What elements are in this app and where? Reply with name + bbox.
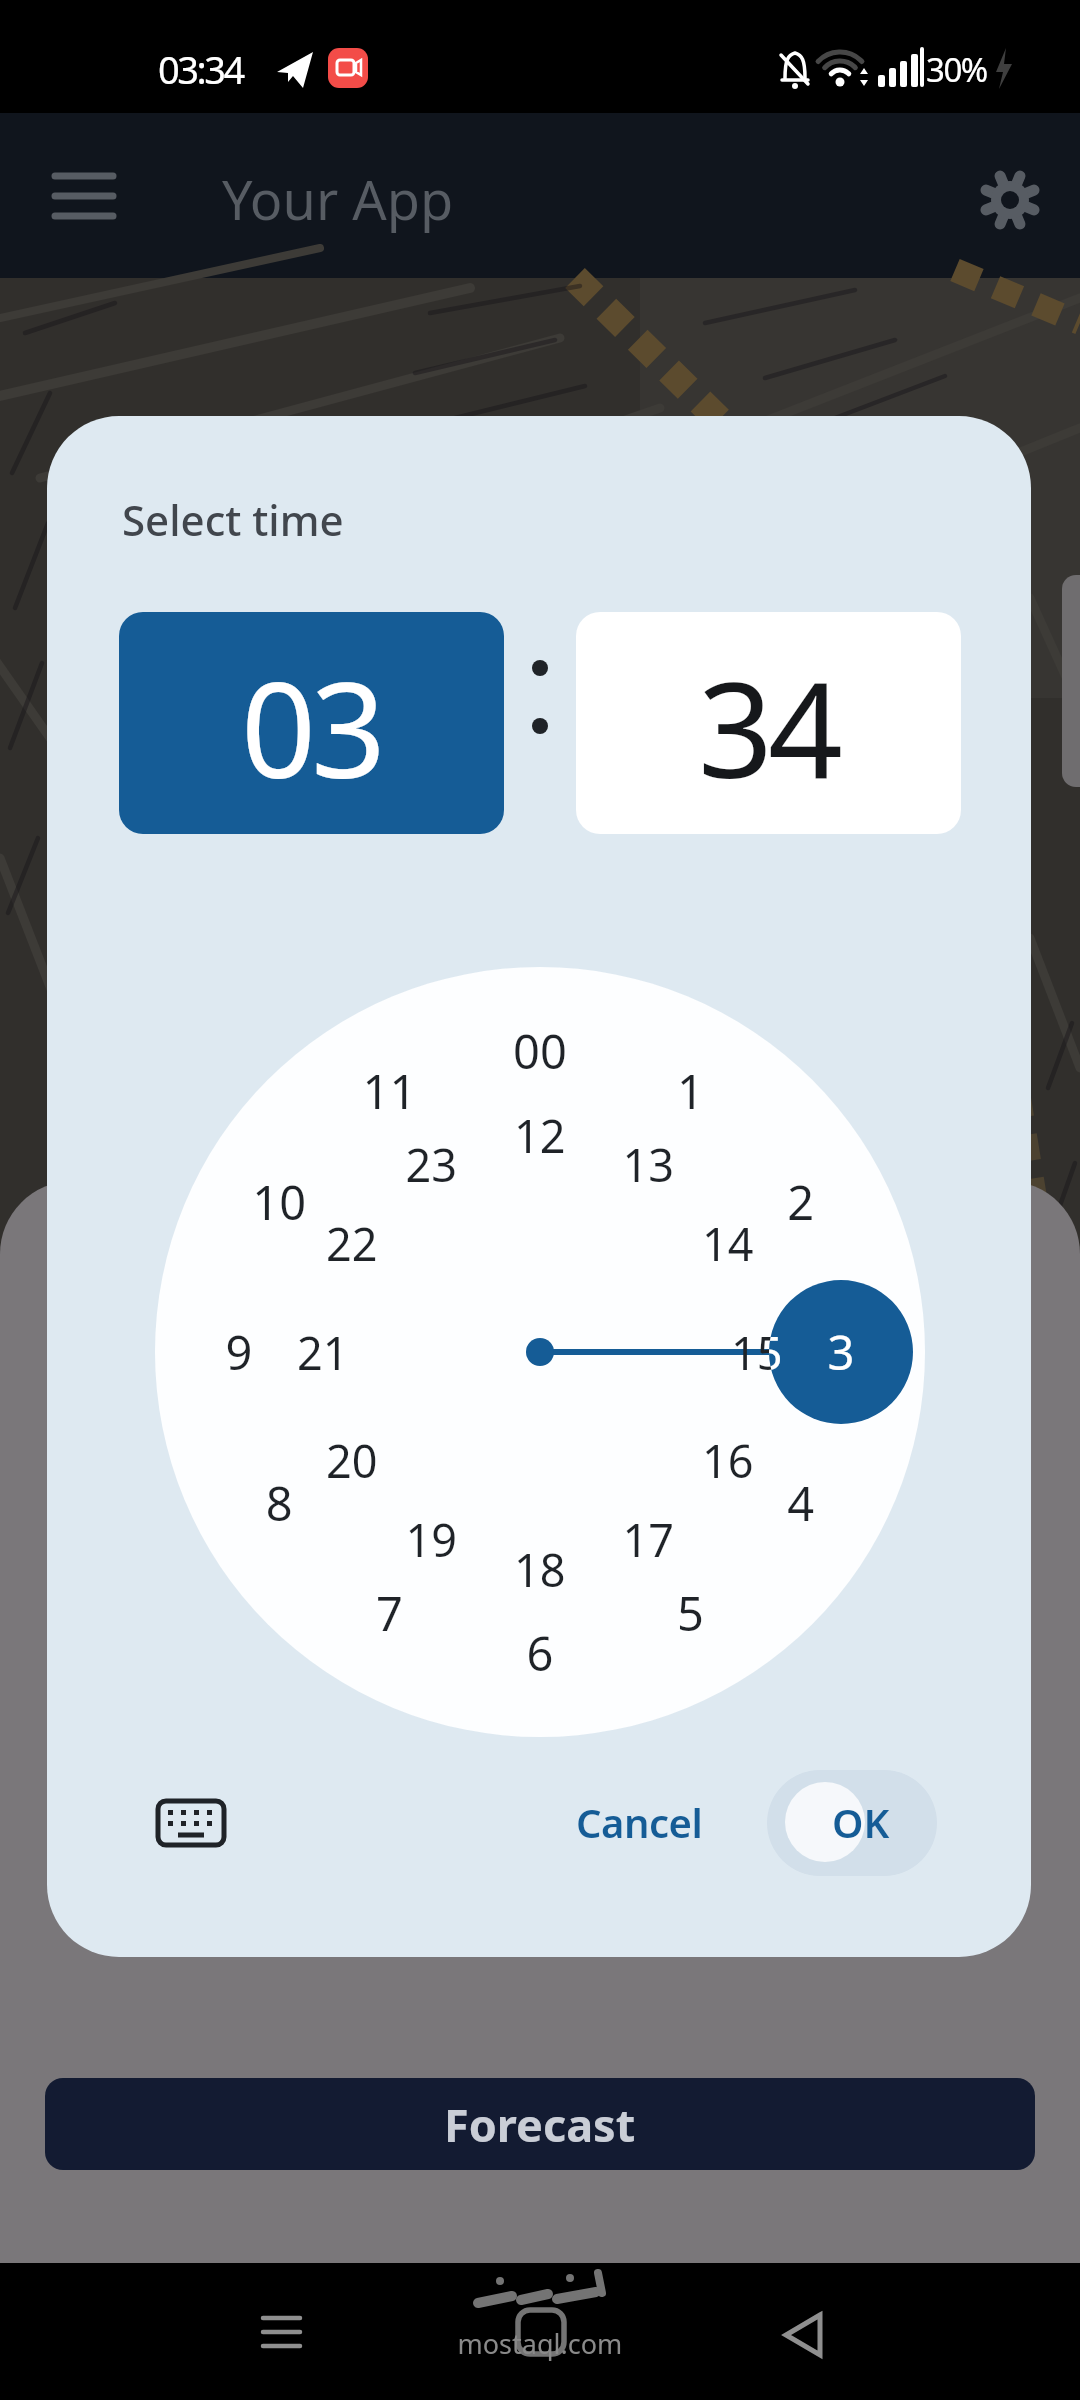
button[interactable] [576, 612, 961, 834]
button[interactable] [142, 1786, 242, 1861]
button[interactable] [765, 2300, 850, 2370]
button[interactable] [240, 2300, 325, 2370]
button[interactable] [45, 2078, 1035, 2170]
button[interactable] [119, 612, 504, 834]
button[interactable] [787, 1781, 917, 1866]
button[interactable] [975, 163, 1045, 233]
button[interactable] [155, 967, 925, 1737]
button[interactable] [43, 168, 127, 224]
button[interactable] [557, 1781, 737, 1866]
